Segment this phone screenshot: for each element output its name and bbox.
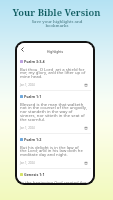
staticText: Psalm 3:3-4 — [24, 59, 45, 64]
staticText: Jan 1, 2024 — [20, 161, 35, 165]
staticText: Genesis 1:1 — [24, 172, 45, 177]
button[interactable]: Psalm 3:3-4 — [17, 56, 93, 91]
staticText: Your Bible Version — [12, 6, 101, 19]
staticText: But thou, O Lord, art a shield for me; m… — [20, 66, 86, 80]
staticText: But his delight is in the law of the Lor… — [20, 144, 83, 158]
staticText: Jan 1, 2024 — [20, 126, 35, 130]
button[interactable]: Genesis 1:1 — [17, 169, 93, 183]
button[interactable]: Delete — [84, 161, 88, 165]
button[interactable]: Delete — [84, 83, 88, 87]
button[interactable]: Psalm 1:2 — [17, 134, 93, 169]
staticText: In the beginning God created the heaven … — [20, 179, 87, 183]
button[interactable]: Delete — [84, 126, 88, 130]
staticText: Blessed is the man that walketh not in t… — [20, 101, 87, 123]
staticText: Save your highlights and bookmarks — [28, 18, 86, 29]
button[interactable]: Psalm 1:1 — [17, 91, 93, 134]
staticText: Psalm 1:1 — [24, 94, 42, 99]
staticText: Highlights — [47, 49, 64, 53]
staticText: Jan 1, 2024 — [20, 83, 35, 87]
staticText: Psalm 1:2 — [24, 137, 42, 142]
button[interactable]: Back — [19, 46, 26, 53]
